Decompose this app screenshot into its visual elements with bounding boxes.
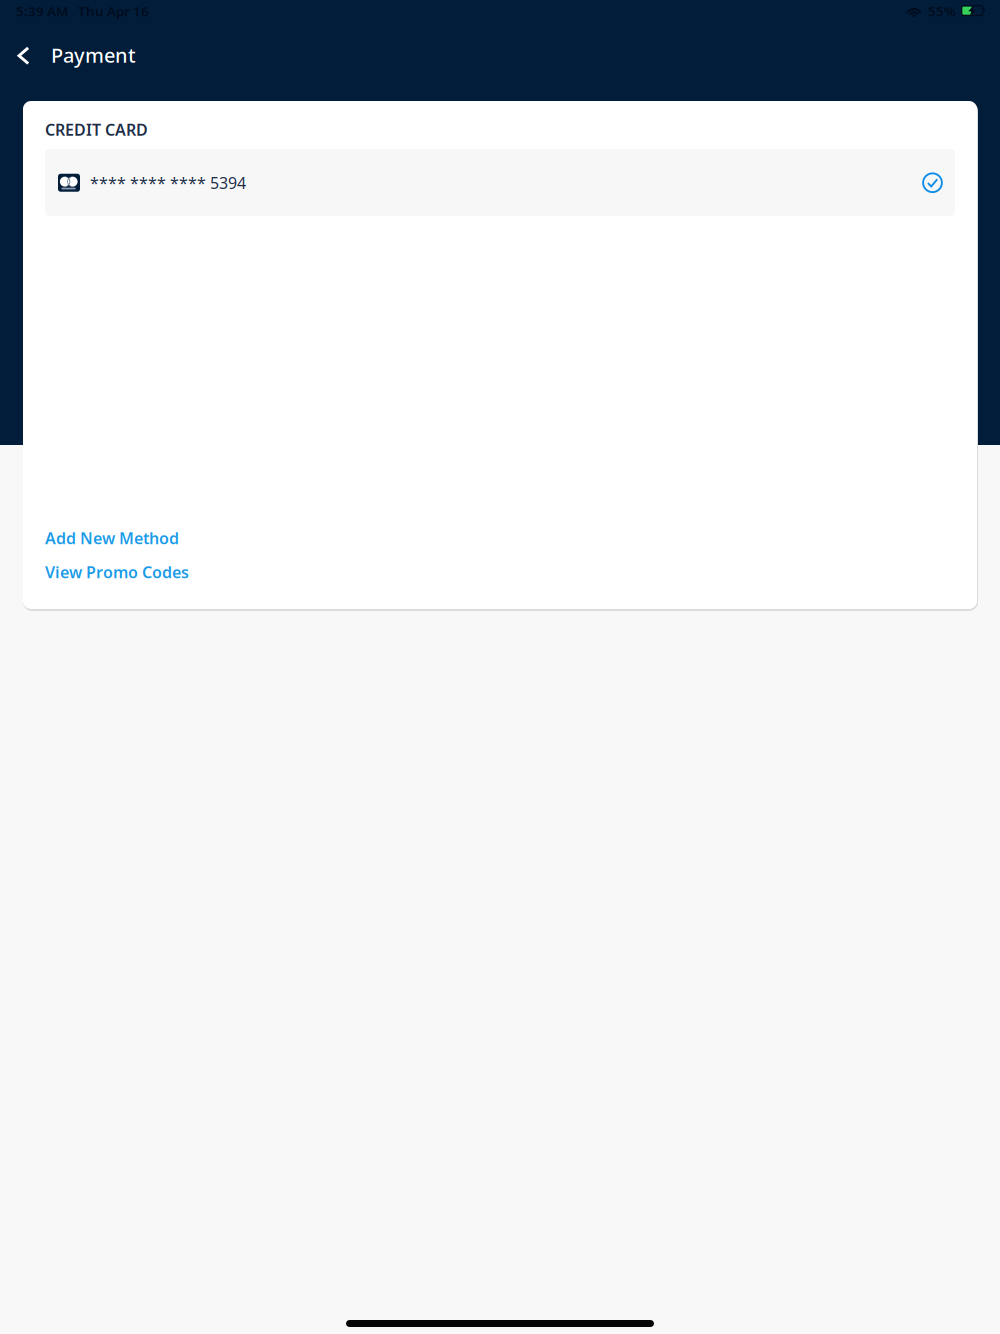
staticText: Payment bbox=[51, 42, 136, 68]
staticText: Thu Apr 16 bbox=[78, 2, 149, 20]
staticText: 55% bbox=[928, 2, 956, 20]
staticText: View Promo Codes bbox=[45, 561, 189, 583]
staticText: CREDIT CARD bbox=[45, 119, 148, 140]
staticText: Add New Method bbox=[45, 527, 179, 549]
button[interactable]: Back bbox=[2, 32, 46, 80]
staticText: 5:39 AM bbox=[16, 2, 68, 20]
button[interactable]: View Promo Codes bbox=[23, 555, 977, 589]
staticText: **** **** **** 5394 bbox=[90, 172, 246, 193]
button[interactable]: Add New Method bbox=[23, 521, 977, 555]
